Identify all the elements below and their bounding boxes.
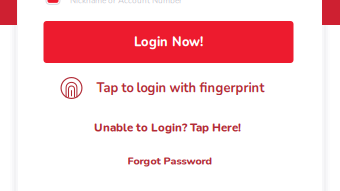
staticText: Tap to login with fingerprint <box>96 79 264 97</box>
button[interactable]: Login Now! <box>43 21 293 63</box>
button[interactable]: Tap to login with fingerprint <box>60 77 279 99</box>
staticText: Nickname or Account Number <box>70 0 182 6</box>
staticText: Login Now! <box>134 33 203 51</box>
staticText: Forgot Password <box>127 154 212 168</box>
staticText: Unable to Login? Tap Here! <box>94 120 241 136</box>
button[interactable]: Unable to Login? Tap Here! <box>94 120 241 136</box>
button[interactable]: Forgot Password <box>127 154 212 168</box>
